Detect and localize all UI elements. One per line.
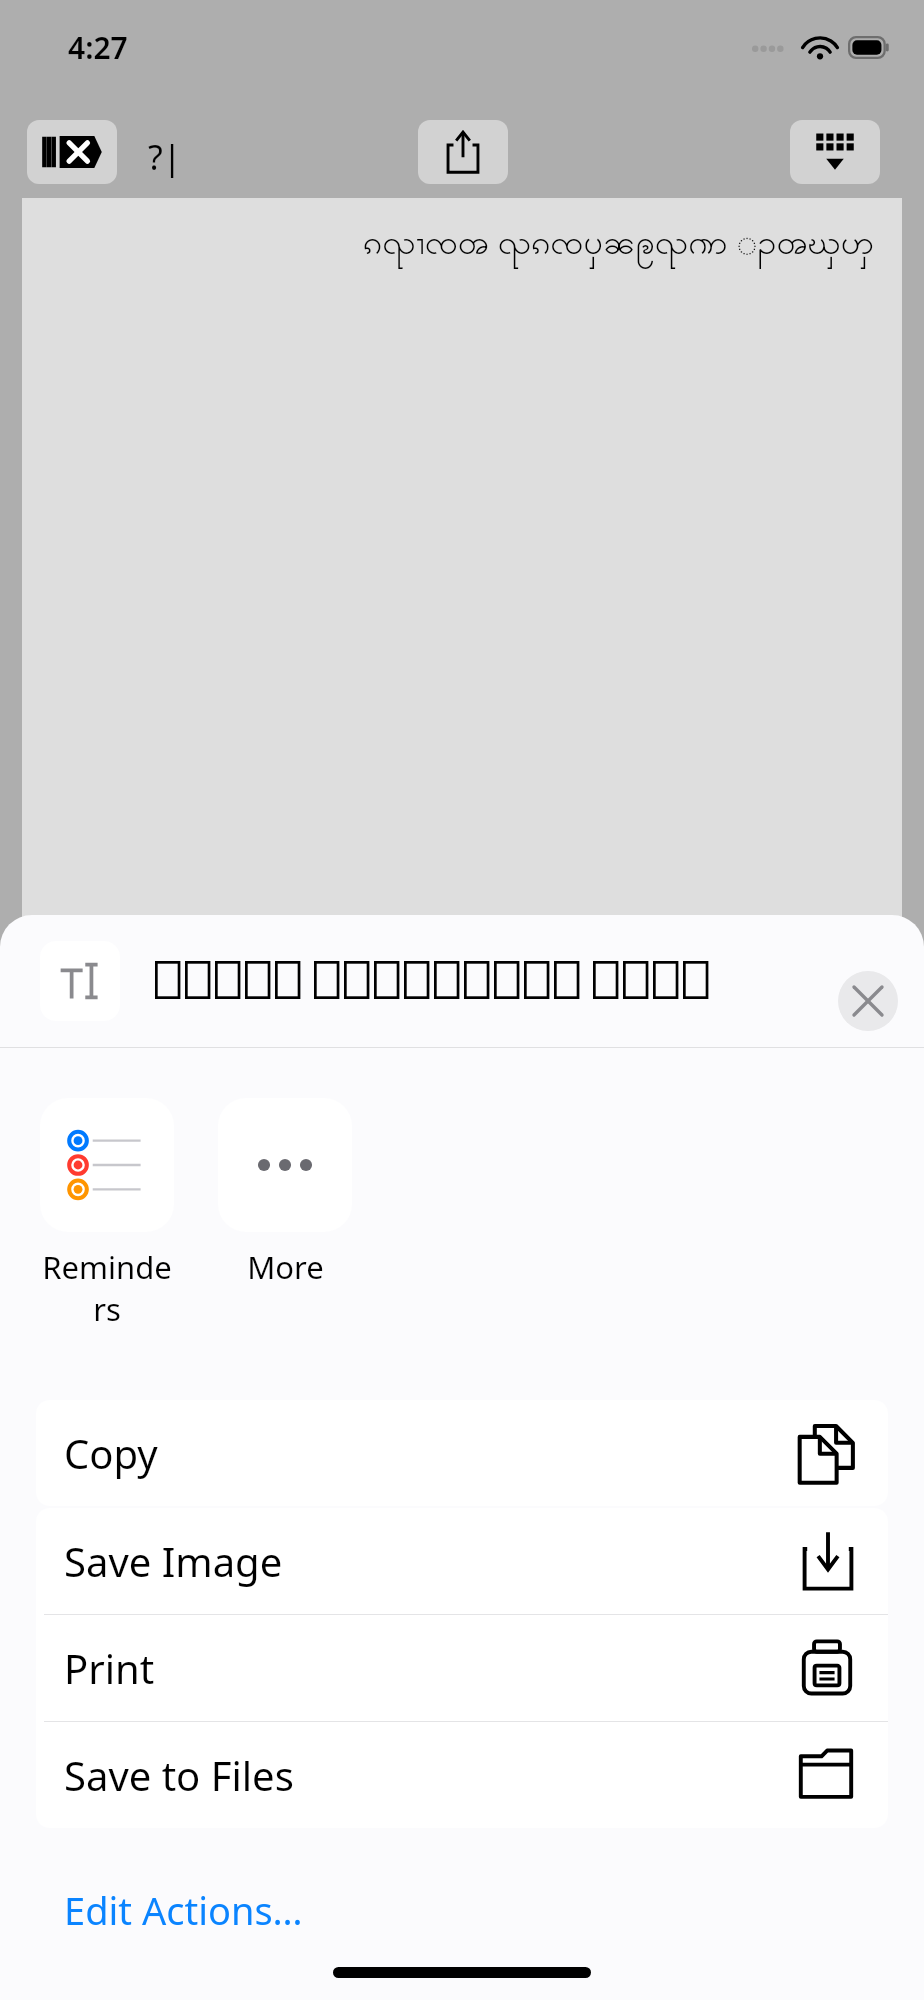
staticText: Edit Actions… — [64, 1884, 303, 1936]
button[interactable]: Close — [838, 971, 898, 1031]
staticText: Save to Files — [64, 1748, 294, 1802]
button[interactable]: Edit Actions… — [0, 1872, 924, 1948]
button[interactable]: More — [218, 1098, 352, 1288]
button[interactable]: Copy — [36, 1400, 888, 1506]
button[interactable]: Save Image — [36, 1508, 888, 1614]
staticText: Reminders — [40, 1246, 174, 1330]
button[interactable]: Share — [418, 120, 508, 184]
staticText: Save Image — [64, 1534, 283, 1588]
staticText: ?| — [148, 134, 182, 180]
button[interactable]: Reminders — [40, 1098, 174, 1330]
staticText: Print — [64, 1641, 155, 1695]
button[interactable]: Save to Files — [36, 1722, 888, 1828]
staticText: ၵၺၢၸၻ ၺၵၸၦၼဨၺၮ ၣၻၰၯ — [363, 218, 874, 271]
button[interactable]: Close tab — [27, 120, 117, 184]
staticText: Copy — [64, 1426, 158, 1480]
button[interactable]: Print — [36, 1615, 888, 1721]
button[interactable]: Hide keyboard — [790, 120, 880, 184]
staticText: More — [247, 1246, 324, 1288]
staticText: 4:27 — [68, 27, 128, 68]
